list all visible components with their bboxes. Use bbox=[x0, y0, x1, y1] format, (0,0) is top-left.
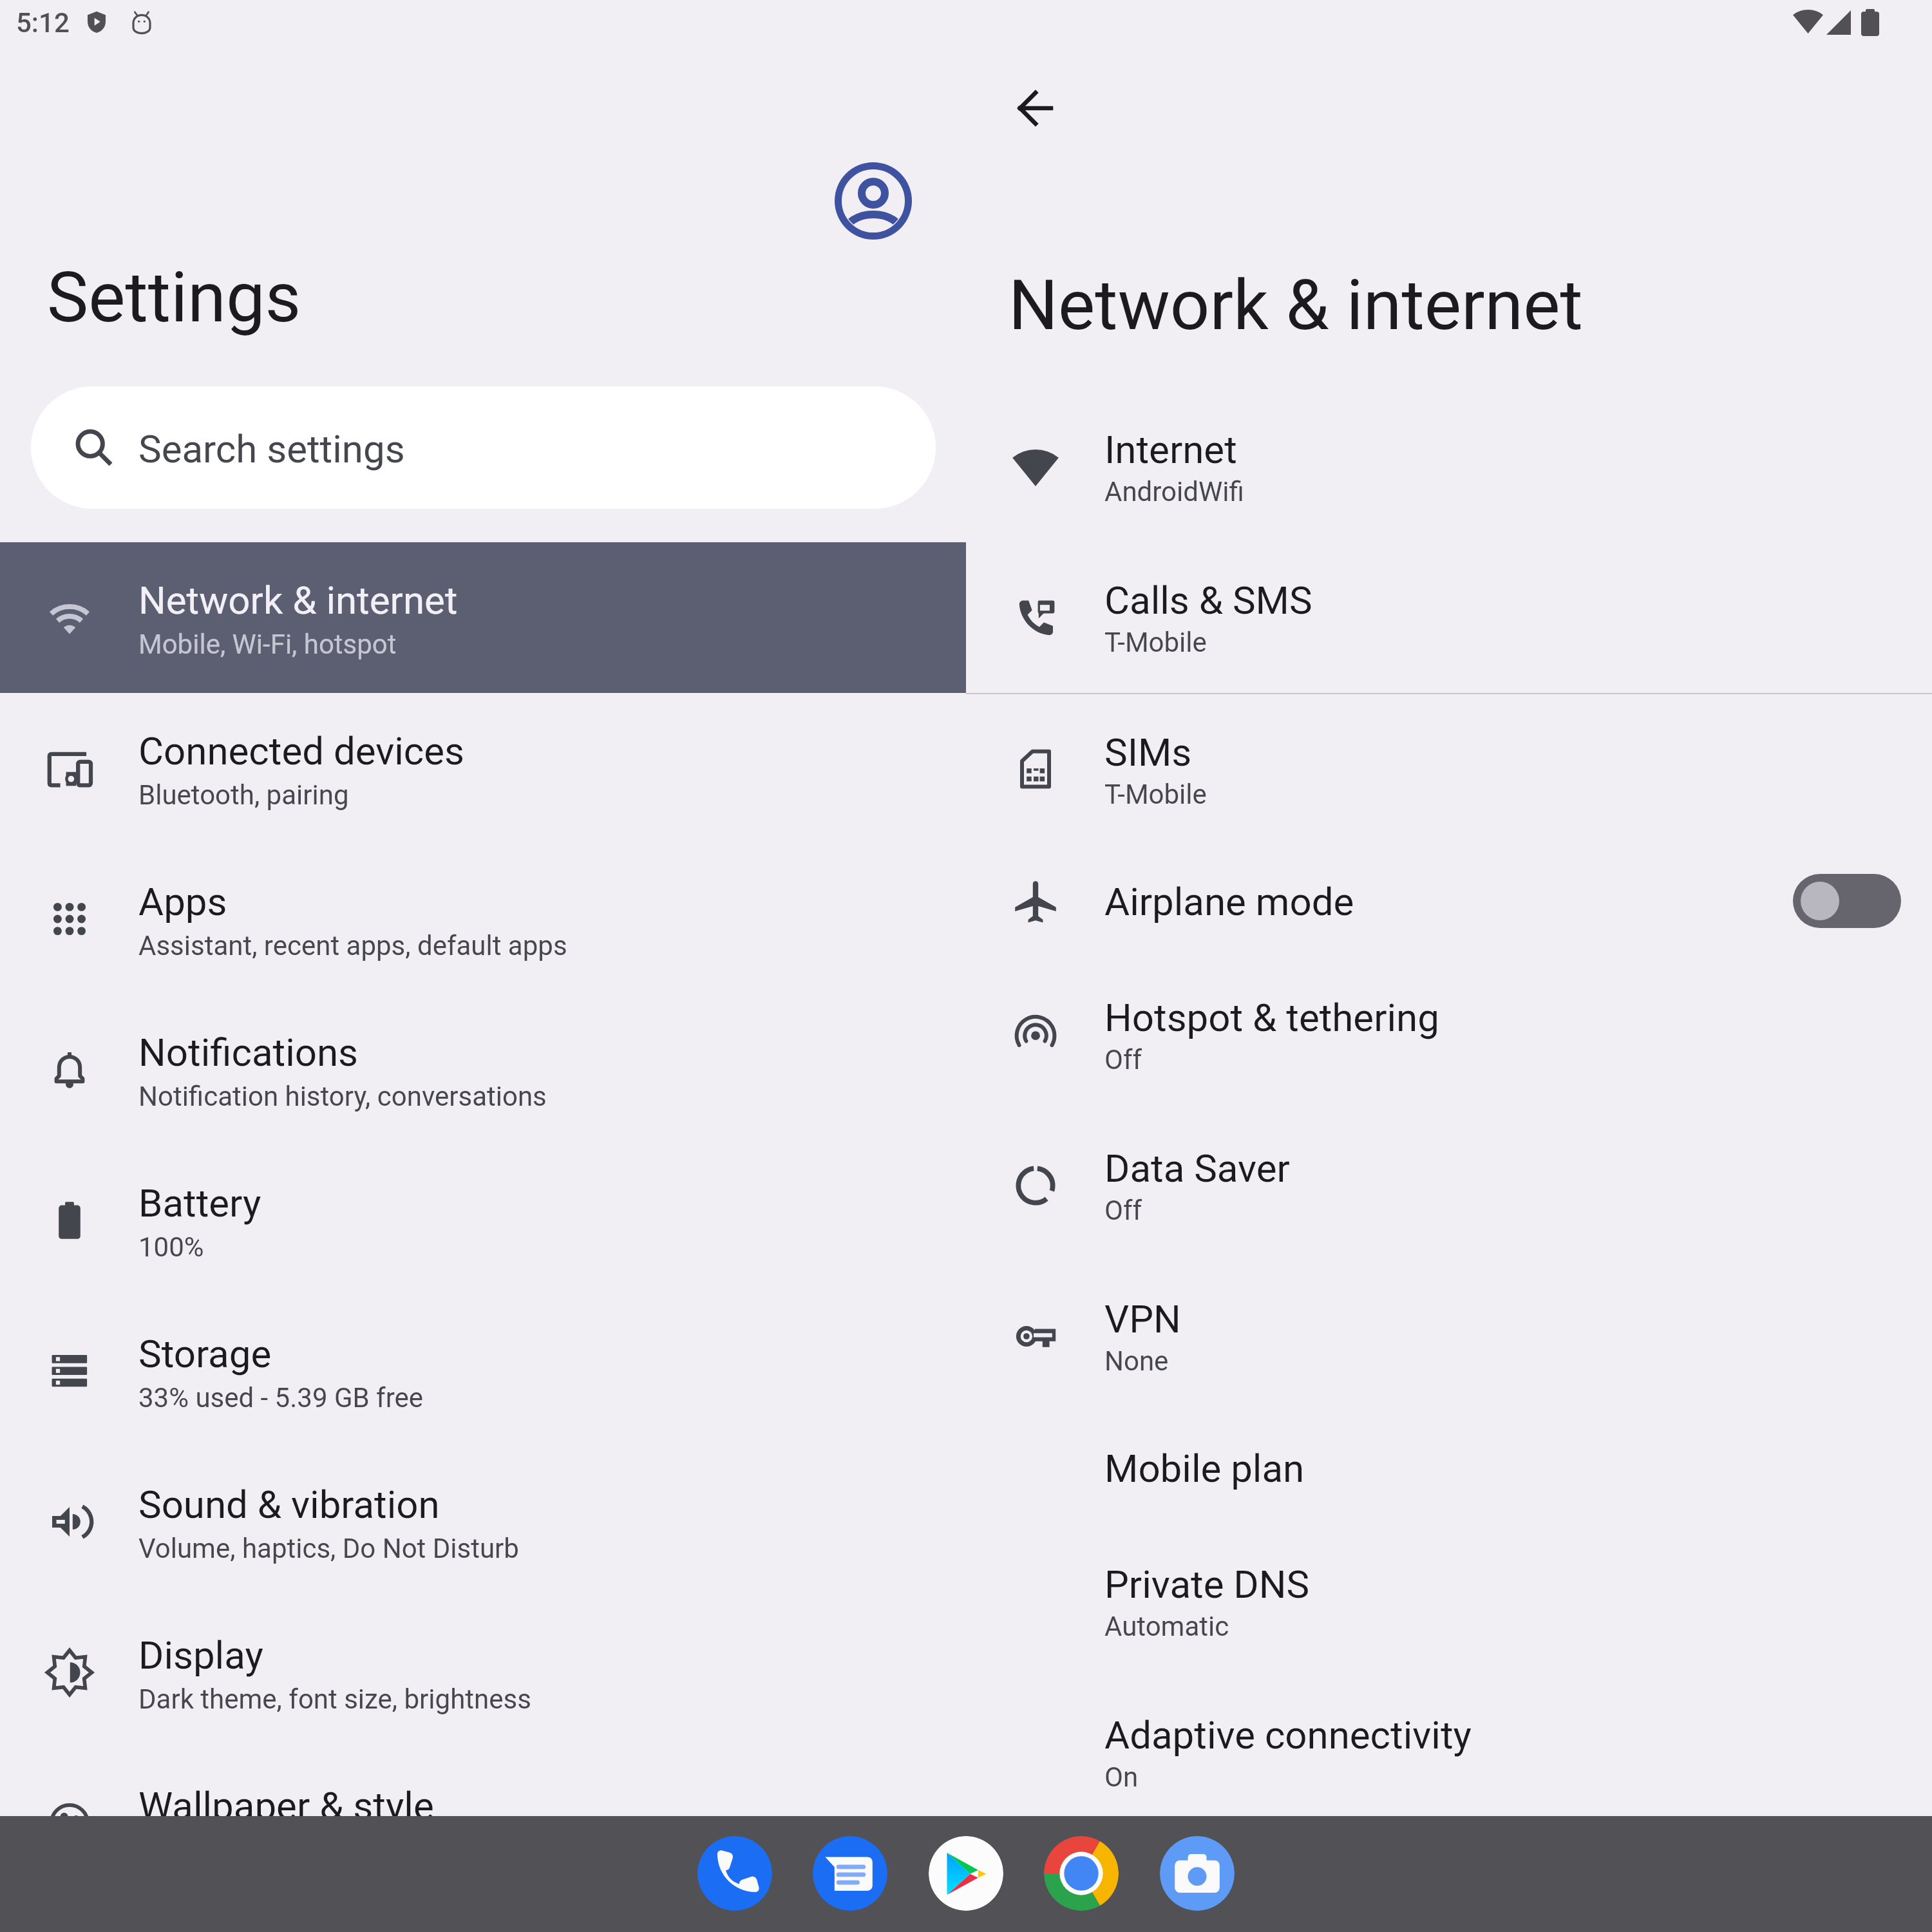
staticText: T-Mobile bbox=[1104, 779, 1207, 810]
button[interactable]: Apps bbox=[0, 844, 966, 994]
button[interactable]: SIMs bbox=[966, 694, 1932, 845]
staticText: Network & internet bbox=[138, 578, 458, 623]
button[interactable]: Play Store bbox=[929, 1836, 1003, 1911]
staticText: Battery bbox=[138, 1180, 261, 1226]
button[interactable]: Phone bbox=[697, 1836, 772, 1911]
staticText: Wallpaper & style bbox=[138, 1783, 434, 1828]
staticText: T-Mobile bbox=[1104, 627, 1207, 658]
staticText: Apps bbox=[138, 879, 227, 924]
staticText: Mobile, Wi-Fi, hotspot bbox=[138, 629, 397, 660]
staticText: AndroidWifi bbox=[1104, 476, 1244, 507]
staticText: On bbox=[1104, 1761, 1139, 1793]
button[interactable]: Storage bbox=[0, 1296, 966, 1446]
button[interactable]: Internet bbox=[966, 392, 1932, 542]
button[interactable]: Camera bbox=[1160, 1836, 1235, 1911]
button[interactable]: Display bbox=[0, 1597, 966, 1748]
staticText: Notification history, conversations bbox=[138, 1081, 547, 1112]
staticText: Notifications bbox=[138, 1030, 359, 1075]
button[interactable]: Airplane mode toggle bbox=[1793, 874, 1901, 928]
staticText: Hotspot & tethering bbox=[1104, 995, 1439, 1040]
button[interactable]: Chrome bbox=[1044, 1836, 1119, 1911]
button[interactable]: Data Saver bbox=[966, 1110, 1932, 1261]
staticText: Calls & SMS bbox=[1104, 578, 1312, 623]
button[interactable]: Wallpaper & style bbox=[0, 1748, 966, 1899]
staticText: Settings bbox=[47, 257, 301, 339]
staticText: Bluetooth, pairing bbox=[138, 779, 349, 811]
button[interactable]: Back bbox=[1012, 84, 1058, 131]
button[interactable]: Sound & vibration bbox=[0, 1446, 966, 1597]
staticText: Private DNS bbox=[1104, 1562, 1310, 1607]
staticText: Airplane mode bbox=[1104, 879, 1354, 924]
staticText: Automatic bbox=[1104, 1611, 1229, 1642]
staticText: Assistant, recent apps, default apps bbox=[138, 930, 567, 961]
button[interactable]: Search settings bbox=[31, 386, 936, 509]
staticText: Data Saver bbox=[1104, 1146, 1290, 1191]
staticText: Network & internet bbox=[1009, 265, 1583, 346]
staticText: Dark theme, font size, brightness bbox=[138, 1683, 531, 1715]
staticText: Connected devices bbox=[138, 728, 465, 773]
button[interactable]: Hotspot & tethering bbox=[966, 960, 1932, 1110]
staticText: Off bbox=[1104, 1044, 1142, 1075]
button[interactable]: Airplane mode bbox=[966, 845, 1932, 960]
staticText: 100% bbox=[138, 1231, 204, 1263]
staticText: Adaptive connectivity bbox=[1104, 1712, 1472, 1757]
staticText: SIMs bbox=[1104, 730, 1192, 775]
button[interactable]: Connected devices bbox=[0, 693, 966, 844]
staticText: Sound & vibration bbox=[138, 1482, 440, 1527]
staticText: Display bbox=[138, 1633, 263, 1678]
staticText: Storage bbox=[138, 1331, 272, 1376]
button[interactable]: VPN bbox=[966, 1261, 1932, 1412]
staticText: VPN bbox=[1104, 1296, 1181, 1341]
button[interactable]: Messages bbox=[813, 1836, 887, 1911]
staticText: 5:12 bbox=[16, 7, 70, 39]
staticText: Internet bbox=[1104, 427, 1237, 472]
button[interactable]: Mobile plan bbox=[966, 1412, 1932, 1526]
button[interactable]: Battery bbox=[0, 1145, 966, 1296]
button[interactable]: Account bbox=[835, 162, 912, 240]
staticText: Off bbox=[1104, 1195, 1142, 1226]
staticText: None bbox=[1104, 1345, 1169, 1377]
staticText: 33% used - 5.39 GB free bbox=[138, 1382, 424, 1414]
button[interactable]: Private DNS bbox=[966, 1526, 1932, 1677]
button[interactable]: Calls & SMS bbox=[966, 542, 1932, 693]
staticText: Mobile plan bbox=[1104, 1446, 1305, 1491]
button[interactable]: Adaptive connectivity bbox=[966, 1677, 1932, 1828]
staticText: Volume, haptics, Do Not Disturb bbox=[138, 1533, 519, 1564]
staticText: Search settings bbox=[138, 426, 405, 471]
button[interactable]: Network & internet bbox=[0, 542, 966, 693]
button[interactable]: Notifications bbox=[0, 994, 966, 1145]
